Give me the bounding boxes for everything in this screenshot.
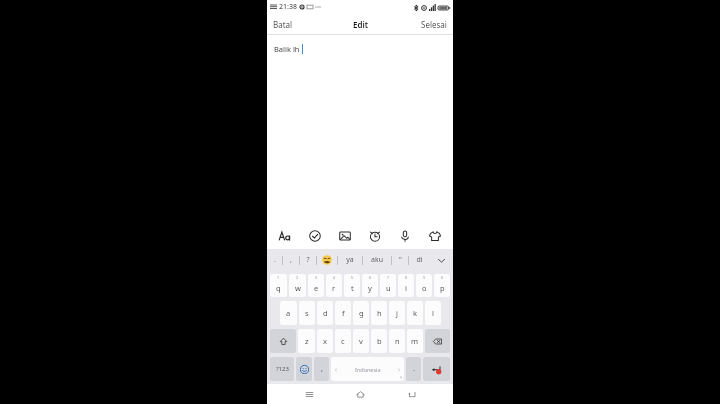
- button[interactable]: ,: [283, 249, 299, 271]
- button[interactable]: s: [299, 301, 315, 325]
- button[interactable]: l: [425, 301, 441, 325]
- button[interactable]: n: [389, 329, 405, 353]
- button[interactable]: b: [371, 329, 387, 353]
- button[interactable]: f: [335, 301, 351, 325]
- button[interactable]: Emoji suggestion: [317, 249, 337, 271]
- staticText: p: [440, 283, 445, 293]
- staticText: aku: [371, 255, 383, 265]
- button[interactable]: 4: [326, 274, 342, 297]
- staticText: e: [314, 283, 319, 293]
- button[interactable]: Home: [350, 384, 370, 404]
- button[interactable]: d: [317, 301, 333, 325]
- button[interactable]: aku: [363, 249, 391, 271]
- button[interactable]: Batal: [267, 16, 299, 33]
- staticText: l: [432, 308, 434, 318]
- staticText: ,: [290, 255, 292, 265]
- staticText: y: [368, 283, 372, 293]
- button[interactable]: Recents: [299, 384, 319, 404]
- staticText: k: [413, 308, 418, 318]
- staticText: 2: [296, 275, 299, 280]
- staticText: q: [276, 283, 281, 293]
- staticText: c: [341, 336, 345, 346]
- button[interactable]: Back: [402, 384, 422, 404]
- staticText: Balik lh: [274, 44, 300, 54]
- staticText: di: [416, 255, 423, 265]
- button[interactable]: .: [406, 357, 421, 381]
- staticText: 1: [277, 275, 280, 280]
- button[interactable]: Selesai: [415, 16, 453, 33]
- staticText: 3: [315, 275, 318, 280]
- button[interactable]: m: [407, 329, 423, 353]
- staticText: ?123: [276, 365, 289, 373]
- button[interactable]: 7: [380, 274, 396, 297]
- button[interactable]: Drawing: [425, 226, 445, 246]
- staticText: m: [411, 336, 419, 346]
- button[interactable]: k: [407, 301, 423, 325]
- button[interactable]: 9: [416, 274, 432, 297]
- staticText: 4: [333, 275, 336, 280]
- button[interactable]: Emoji: [296, 357, 312, 381]
- button[interactable]: 5: [344, 274, 360, 297]
- button[interactable]: Insert image: [335, 226, 355, 246]
- button[interactable]: j: [389, 301, 405, 325]
- staticText: ya: [346, 255, 354, 265]
- staticText: 6: [369, 275, 372, 280]
- staticText: s: [305, 308, 309, 318]
- staticText: 5: [351, 275, 354, 280]
- button[interactable]: v: [353, 329, 369, 353]
- button[interactable]: Enter: [423, 357, 450, 381]
- button[interactable]: Edit: [347, 16, 374, 33]
- button[interactable]: di: [409, 249, 429, 271]
- button[interactable]: ?123: [270, 357, 294, 381]
- button[interactable]: ?: [300, 249, 316, 271]
- button[interactable]: Balik lh: [267, 35, 453, 223]
- button[interactable]: Collapse suggestions: [429, 249, 453, 271]
- staticText: i: [405, 283, 407, 293]
- button[interactable]: x: [317, 329, 333, 353]
- staticText: o: [422, 283, 427, 293]
- button[interactable]: 3: [308, 274, 324, 297]
- button[interactable]: h: [371, 301, 387, 325]
- staticText: v: [359, 336, 363, 346]
- button[interactable]: z: [298, 329, 315, 353]
- staticText: 8: [405, 275, 408, 280]
- button[interactable]: g: [353, 301, 369, 325]
- button[interactable]: Voice input: [395, 226, 415, 246]
- staticText: d: [323, 308, 328, 318]
- button[interactable]: 8: [398, 274, 414, 297]
- staticText: w: [295, 283, 301, 293]
- staticText: 9: [423, 275, 426, 280]
- button[interactable]: 1: [270, 274, 287, 297]
- staticText: Indonesia: [355, 366, 381, 373]
- button[interactable]: 2: [289, 274, 306, 297]
- button[interactable]: 0: [434, 274, 450, 297]
- button[interactable]: 6: [362, 274, 378, 297]
- staticText: t: [351, 283, 354, 293]
- button[interactable]: Checklist: [305, 226, 325, 246]
- staticText: z: [305, 336, 309, 346]
- staticText: ,: [321, 364, 323, 374]
- button[interactable]: ya: [338, 249, 362, 271]
- staticText: .: [274, 255, 276, 265]
- staticText: .: [413, 364, 415, 374]
- staticText: b: [377, 336, 382, 346]
- button[interactable]: .: [267, 249, 282, 271]
- button[interactable]: a: [280, 301, 297, 325]
- staticText: 21:38: [279, 2, 297, 12]
- staticText: Selesai: [421, 19, 447, 30]
- staticText: 7: [387, 275, 390, 280]
- button[interactable]: Shift: [270, 329, 296, 353]
- staticText: j: [396, 308, 398, 318]
- staticText: ?: [306, 255, 310, 265]
- button[interactable]: Space, Indonesia: [331, 357, 404, 381]
- button[interactable]: Format text: [275, 226, 295, 246]
- staticText: x: [323, 336, 327, 346]
- button[interactable]: c: [335, 329, 351, 353]
- button[interactable]: ,: [314, 357, 329, 381]
- staticText: Batal: [273, 19, 293, 30]
- staticText: f: [342, 308, 345, 318]
- staticText: g: [359, 308, 364, 318]
- button[interactable]: Backspace: [425, 329, 450, 353]
- button[interactable]: ": [392, 249, 408, 271]
- button[interactable]: Reminder: [365, 226, 385, 246]
